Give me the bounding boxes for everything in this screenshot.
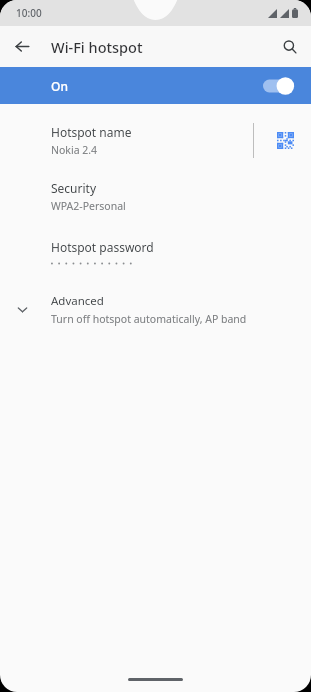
button[interactable]: Advanced [0, 288, 311, 330]
staticText: Advanced [51, 293, 104, 309]
staticText: Hotspot name [51, 124, 132, 140]
button[interactable]: Search [277, 34, 303, 60]
other: Hotspot toggle [263, 75, 297, 97]
staticText: WPA2-Personal [51, 199, 126, 213]
button[interactable]: Share hotspot QR code [272, 127, 298, 153]
staticText: Wi-Fi hotspot [51, 37, 143, 57]
staticText: Nokia 2.4 [51, 143, 98, 157]
button[interactable]: Hotspot password [0, 232, 311, 272]
staticText: Turn off hotspot automatically, AP band [51, 312, 247, 326]
button[interactable]: Back [10, 34, 35, 59]
staticText: Hotspot password [51, 239, 154, 255]
staticText: 10:00 [16, 6, 42, 20]
staticText: Security [51, 180, 97, 196]
button[interactable]: Hotspot name [0, 120, 311, 160]
button[interactable]: On [0, 67, 311, 104]
staticText: On [51, 78, 68, 94]
button[interactable]: Security [0, 176, 311, 216]
